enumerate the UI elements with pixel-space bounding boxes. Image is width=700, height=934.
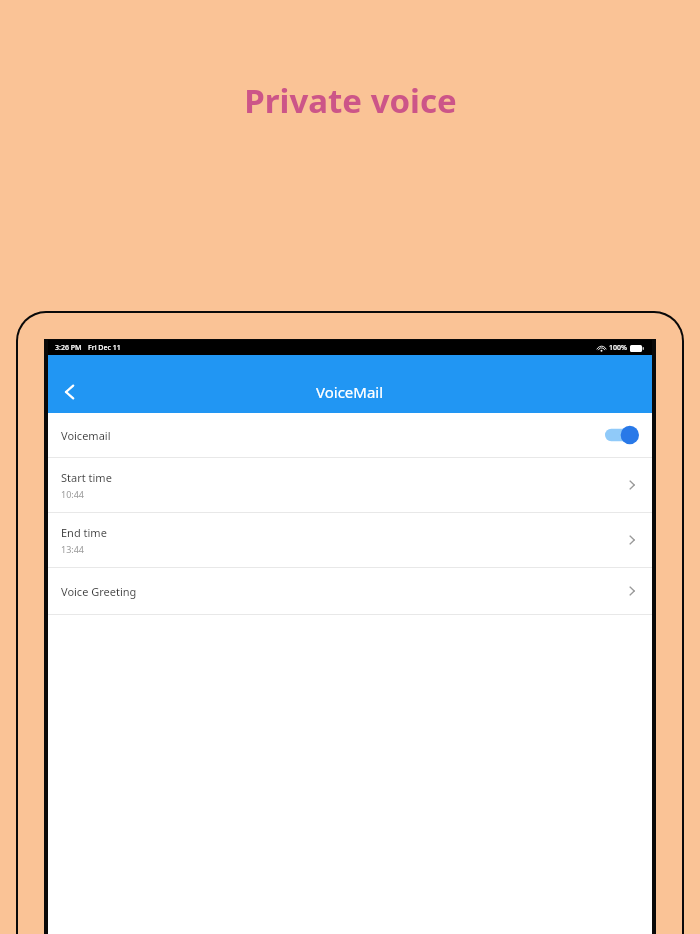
button[interactable]: Back xyxy=(48,370,92,414)
staticText: Voicemail xyxy=(61,428,111,443)
staticText: 10:44 xyxy=(61,488,85,500)
staticText: 3:26 PM xyxy=(55,343,82,353)
staticText: Private voice xyxy=(244,78,457,123)
button[interactable]: Voice Greeting xyxy=(48,568,652,614)
staticText: Voice Greeting xyxy=(61,584,137,599)
staticText: Fri Dec 11 xyxy=(88,343,121,353)
staticText: Start time xyxy=(61,470,112,485)
button[interactable]: Voicemail xyxy=(48,413,652,457)
staticText: 100% xyxy=(609,343,627,353)
button[interactable]: End time xyxy=(48,513,652,567)
button[interactable]: Voicemail toggle xyxy=(605,425,639,445)
staticText: End time xyxy=(61,525,107,540)
staticText: 13:44 xyxy=(61,543,85,555)
button[interactable]: Start time xyxy=(48,458,652,512)
staticText: VoiceMail xyxy=(316,382,384,402)
